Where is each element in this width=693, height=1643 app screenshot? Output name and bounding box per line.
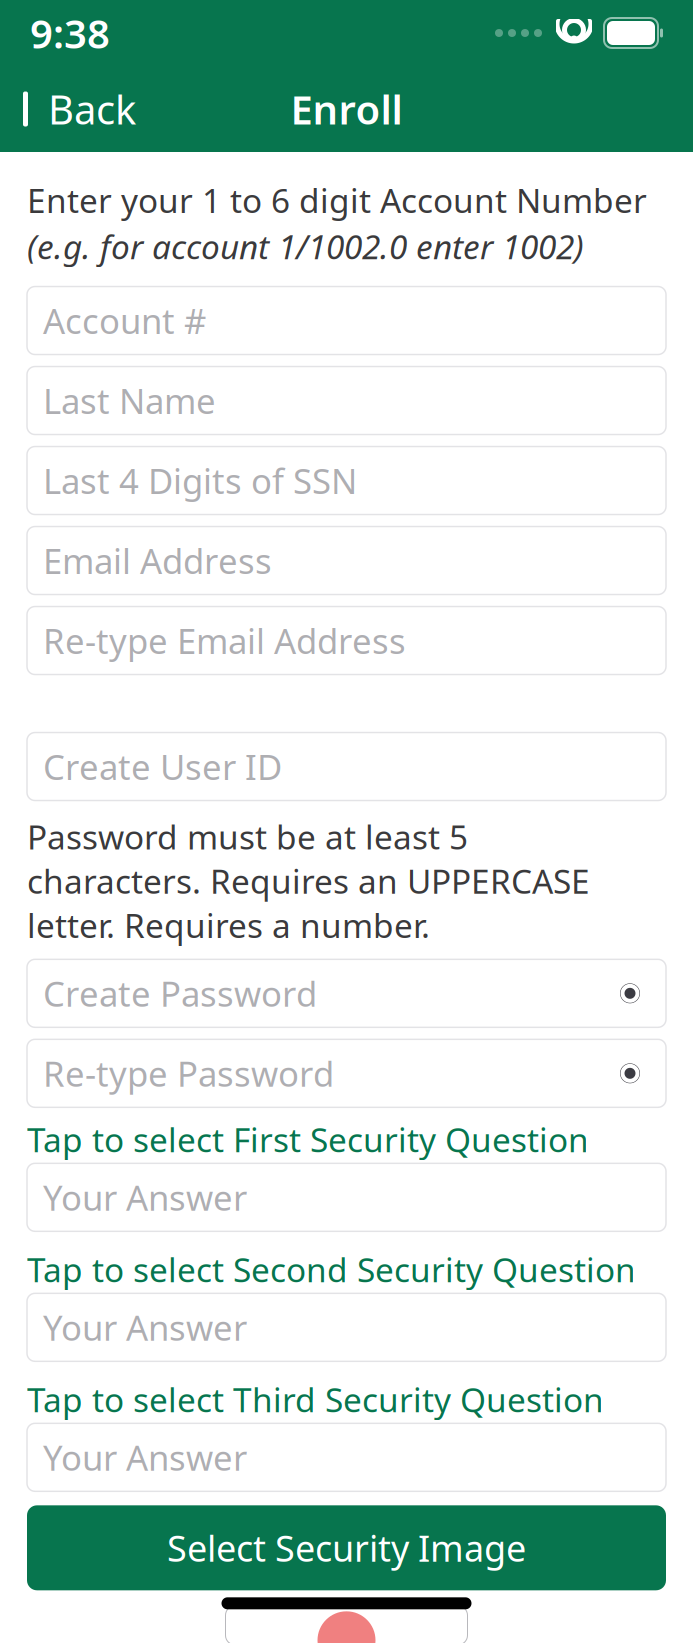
staticText: Re-type Password [43,1050,334,1096]
staticText: 9:38 [30,6,110,59]
staticText: Last Name [43,377,216,423]
staticText: Tap to select Second Security Question [27,1247,636,1291]
staticText: Create Password [43,970,317,1016]
button[interactable]: Tap to select First Security Question [27,1119,666,1159]
staticText: Back [48,82,136,135]
button[interactable]: Show password [610,1056,650,1090]
staticText: Create User ID [43,743,282,789]
staticText: Your Answer [43,1434,247,1480]
staticText: Password must be at least 5 characters. … [27,814,590,947]
staticText: Tap to select Third Security Question [27,1377,604,1421]
staticText: Select Security Image [167,1524,526,1572]
staticText: Email Address [43,537,272,583]
button[interactable]: Show password [610,976,650,1010]
staticText: Enroll [290,82,402,135]
staticText: Your Answer [43,1304,247,1350]
staticText: Re-type Email Address [43,617,406,663]
staticText: Last 4 Digits of SSN [43,457,357,503]
staticText: (e.g. for account 1/1002.0 enter 1002) [27,224,584,269]
staticText: Tap to select First Security Question [27,1117,589,1161]
staticText: Your Answer [43,1174,247,1220]
button[interactable]: Tap to select Second Security Question [27,1249,666,1289]
button[interactable]: Select Security Image [27,1505,666,1590]
staticText: Enter your 1 to 6 digit Account Number [27,178,647,222]
staticText: Account # [43,297,206,343]
button[interactable]: Back [0,79,154,139]
button[interactable]: Tap to select Third Security Question [27,1379,666,1419]
